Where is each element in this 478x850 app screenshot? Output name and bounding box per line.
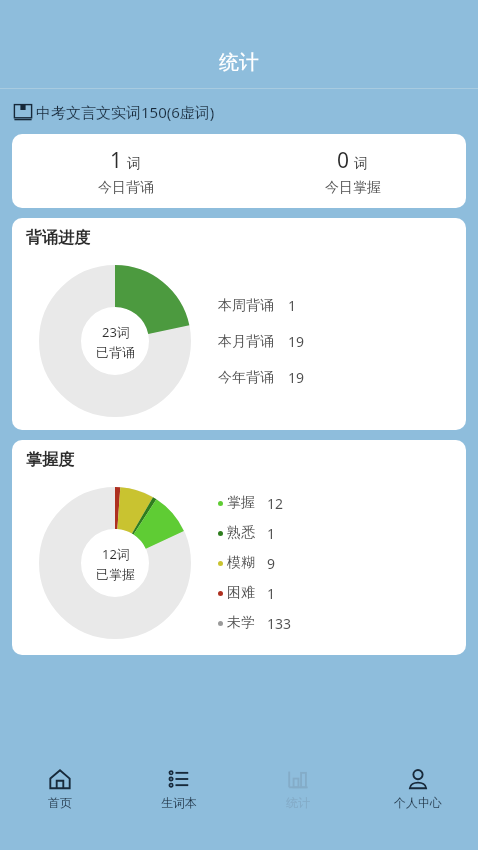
staticText: 困难 [227, 584, 255, 602]
button[interactable]: 首页 [0, 755, 119, 850]
staticText: 词 [354, 155, 368, 173]
staticText: 19 [288, 368, 305, 387]
staticText: 熟悉 [227, 524, 255, 542]
staticText: 133 [267, 614, 292, 633]
staticText: 今年背诵 [218, 369, 274, 387]
other: 统计 [287, 768, 309, 790]
other: 首页 [49, 768, 71, 790]
staticText: 首页 [48, 795, 72, 810]
staticText: 9 [267, 554, 276, 573]
staticText: 本周背诵 [218, 297, 274, 315]
staticText: 未学 [227, 614, 255, 632]
staticText: 统计 [219, 50, 259, 75]
staticText: 掌握 [227, 494, 255, 512]
staticText: 个人中心 [394, 795, 442, 810]
other: 生词本 [168, 768, 190, 790]
staticText: 12词 [102, 545, 130, 563]
staticText: 已背诵 [96, 344, 135, 360]
staticText: 今日掌握 [325, 179, 381, 197]
staticText: 1 [288, 296, 297, 315]
staticText: 23词 [102, 323, 130, 341]
staticText: 1 [267, 524, 276, 543]
staticText: 统计 [286, 795, 310, 810]
staticText: 模糊 [227, 554, 255, 572]
button[interactable]: 1 [12, 146, 239, 197]
staticText: 12 [267, 494, 284, 513]
staticText: 1 [110, 146, 123, 175]
staticText: 背诵进度 [26, 228, 90, 248]
button[interactable]: 个人中心 [358, 755, 478, 850]
staticText: 0 [337, 146, 350, 175]
staticText: 掌握度 [26, 450, 74, 470]
staticText: 19 [288, 332, 305, 351]
staticText: 生词本 [161, 795, 197, 810]
staticText: 已掌握 [96, 566, 135, 582]
staticText: 1 [267, 584, 276, 603]
staticText: 词 [127, 155, 141, 173]
other: 个人中心 [407, 768, 429, 790]
staticText: 中考文言文实词150(6虚词) [36, 102, 215, 122]
other: Book [13, 102, 33, 122]
button[interactable]: 生词本 [119, 755, 238, 850]
staticText: 今日背诵 [98, 179, 154, 197]
button[interactable]: 0 [239, 146, 466, 197]
staticText: 本月背诵 [218, 333, 274, 351]
button[interactable]: Book [0, 89, 478, 134]
